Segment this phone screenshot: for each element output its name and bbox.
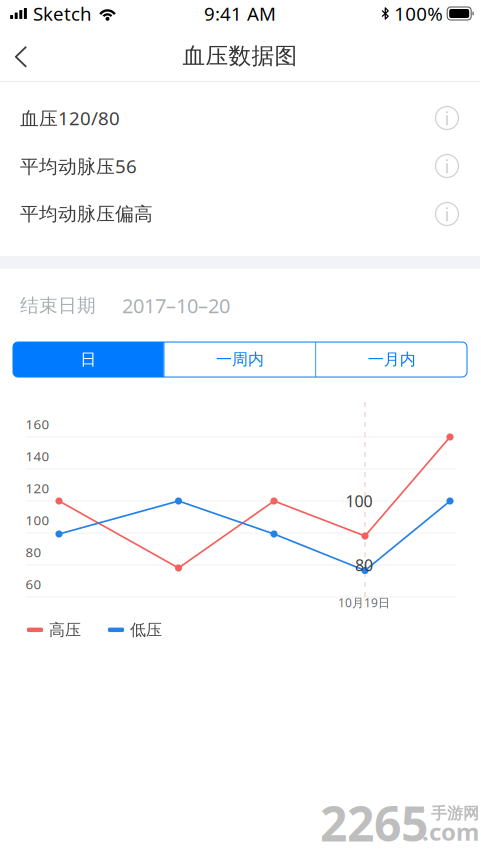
staticText: 平均动脉压56 [20, 154, 137, 178]
staticText: 平均动脉压偏高 [20, 202, 153, 225]
staticText: Sketch [33, 1, 92, 26]
staticText: 80 [355, 554, 373, 576]
button[interactable]: 平均动脉压56 [0, 142, 480, 190]
staticText: 2017–10–20 [122, 292, 230, 319]
button[interactable]: 一月内 [316, 342, 467, 377]
staticText: 高压 [49, 620, 81, 640]
staticText: i [444, 106, 449, 130]
staticText: 9:41 AM [204, 1, 276, 26]
button[interactable]: 血压120/80 [0, 94, 480, 142]
staticText: 100 [25, 511, 49, 529]
staticText: i [444, 202, 449, 226]
staticText: 140 [25, 447, 49, 465]
staticText: 手游网 [431, 804, 479, 823]
staticText: 120 [25, 479, 49, 497]
staticText: 160 [25, 415, 49, 433]
staticText: .com [422, 816, 479, 847]
staticText: 血压数据图 [182, 42, 297, 70]
staticText: 10月19日 [338, 594, 390, 610]
staticText: 100 [345, 490, 372, 512]
button[interactable]: Back [0, 32, 43, 76]
button[interactable]: 平均动脉压偏高 [0, 190, 480, 238]
staticText: 血压120/80 [20, 106, 120, 130]
staticText: 2265 [320, 791, 428, 854]
staticText: 日 [80, 350, 96, 369]
staticText: 60 [25, 575, 41, 593]
staticText: 一月内 [368, 350, 416, 369]
button[interactable]: 一周内 [165, 342, 315, 377]
staticText: 80 [25, 543, 41, 561]
staticText: i [444, 154, 449, 178]
staticText: 一周内 [216, 350, 264, 369]
button[interactable]: 日 [13, 342, 164, 377]
staticText: 结束日期 [20, 294, 96, 317]
staticText: 100% [394, 1, 443, 26]
staticText: 低压 [130, 620, 162, 640]
